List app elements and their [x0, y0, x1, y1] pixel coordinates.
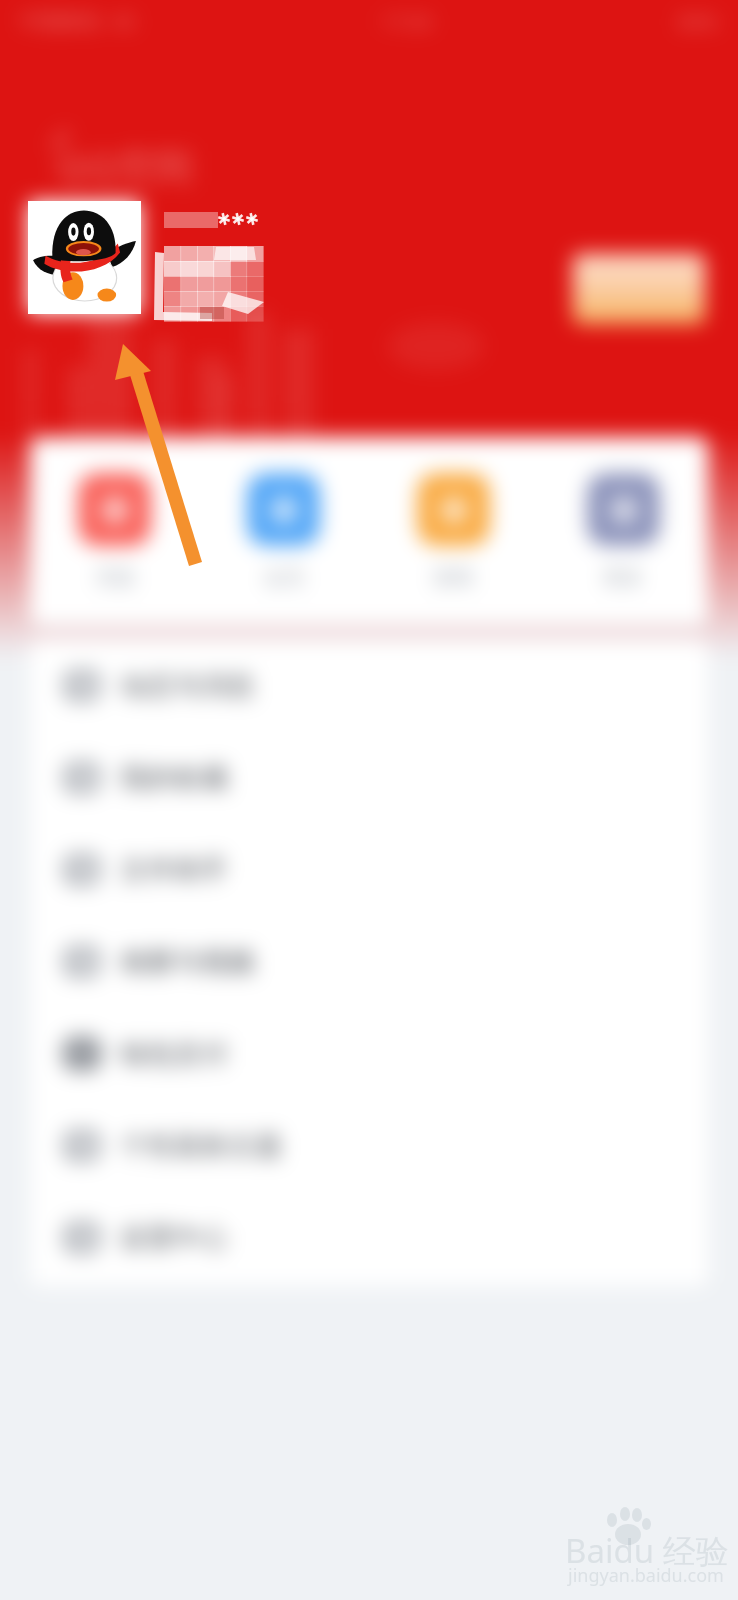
staticText: 钱包支付	[120, 1037, 228, 1071]
staticText: 设置中心	[120, 1221, 228, 1255]
button[interactable]: 我的收藏	[62, 732, 682, 824]
staticText: 动态与消息	[120, 669, 255, 703]
button[interactable]: 设置中心	[62, 1192, 682, 1284]
button[interactable]: 会员	[199, 473, 368, 590]
button[interactable]: 动态与消息	[62, 640, 682, 732]
staticText: 我的收藏	[120, 761, 228, 795]
staticText: 游戏	[433, 565, 473, 590]
button[interactable]: Download	[573, 254, 705, 324]
button[interactable]: 钱包支付	[62, 1008, 682, 1100]
button[interactable]: QQ application icon	[28, 201, 141, 314]
staticText: 相册与视频	[120, 945, 255, 979]
staticText: 个性装扮主题	[120, 1129, 282, 1163]
staticText: Baidu 经验	[565, 1528, 729, 1573]
button[interactable]: 文件助手	[62, 824, 682, 916]
button[interactable]: 更多	[538, 473, 708, 590]
button[interactable]: 相册与视频	[62, 916, 682, 1008]
staticText: 更多	[603, 565, 643, 590]
staticText: 充值	[95, 565, 135, 590]
staticText: 中国移动	[20, 9, 100, 34]
button[interactable]: 个性装扮主题	[62, 1100, 682, 1192]
button[interactable]: 游戏	[368, 473, 538, 590]
staticText: 文件助手	[120, 853, 228, 887]
button[interactable]: 充值	[30, 473, 199, 590]
staticText: jingyan.baidu.com	[568, 1563, 724, 1588]
staticText: QQ空间	[56, 140, 193, 192]
